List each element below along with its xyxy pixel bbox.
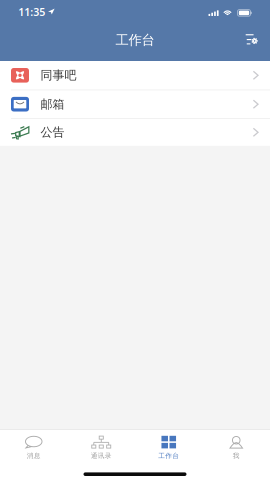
button[interactable]: Workbench settings	[231, 24, 270, 54]
staticText: 工作台	[158, 452, 179, 460]
staticText: 邮箱	[40, 97, 64, 111]
staticText: 同事吧	[40, 68, 76, 83]
staticText: 工作台	[115, 32, 154, 48]
button[interactable]: 邮箱	[0, 90, 270, 118]
button[interactable]: 消息	[0, 430, 67, 462]
staticText: 公告	[40, 125, 64, 140]
staticText: 我	[233, 452, 240, 460]
button[interactable]: 工作台	[135, 430, 202, 462]
staticText: 11:35	[18, 5, 45, 19]
staticText: 通讯录	[91, 452, 112, 460]
button[interactable]: 通讯录	[67, 430, 135, 462]
button[interactable]: 同事吧	[0, 61, 270, 90]
button[interactable]: 我	[202, 430, 270, 462]
button[interactable]: 公告	[0, 119, 270, 146]
staticText: 消息	[27, 452, 41, 460]
